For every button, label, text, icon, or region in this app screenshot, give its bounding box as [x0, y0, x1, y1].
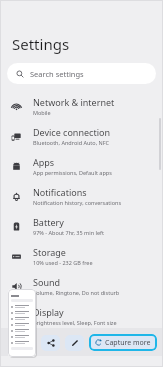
- staticText: 97% - About 7hr, 35 min left: [33, 229, 104, 236]
- staticText: Sound: [33, 276, 61, 288]
- button[interactable]: Search settings: [7, 63, 156, 84]
- staticText: Volume, Ringtone, Do not disturb: [33, 289, 120, 296]
- button[interactable]: Notifications: [0, 181, 163, 211]
- staticText: Bluetooth, Android Auto, NFC: [33, 139, 110, 146]
- staticText: Brightness level, Sleep, Font size: [33, 319, 117, 326]
- button[interactable]: Display: [0, 301, 163, 331]
- button[interactable]: Network & internet: [0, 91, 163, 121]
- staticText: Battery: [33, 216, 64, 228]
- staticText: Network & internet: [33, 96, 115, 108]
- button[interactable]: Storage: [0, 241, 163, 271]
- staticText: Display: [33, 306, 64, 318]
- button[interactable]: Edit: [65, 335, 84, 351]
- staticText: Device connection: [33, 126, 110, 138]
- staticText: Search settings: [30, 69, 84, 79]
- staticText: App permissions, Default apps: [33, 169, 112, 176]
- button[interactable]: Capture more: [89, 334, 157, 351]
- staticText: 10% used - 232 GB free: [33, 259, 93, 266]
- button[interactable]: Device connection: [0, 121, 163, 151]
- staticText: Storage: [33, 246, 66, 258]
- staticText: Notification history, conversations: [33, 199, 122, 206]
- staticText: Notifications: [33, 186, 87, 198]
- button[interactable]: Battery: [0, 211, 163, 241]
- button[interactable]: Apps: [0, 151, 163, 181]
- button[interactable]: Sound: [0, 271, 163, 301]
- button[interactable]: [8, 289, 36, 357]
- staticText: Capture more: [105, 338, 151, 348]
- staticText: Mobile: [33, 109, 51, 116]
- staticText: Apps: [33, 156, 55, 168]
- button[interactable]: Share: [41, 335, 60, 351]
- staticText: Settings: [12, 34, 70, 54]
